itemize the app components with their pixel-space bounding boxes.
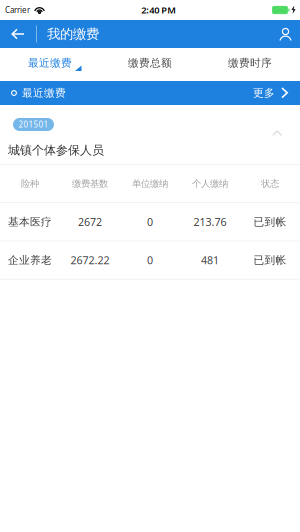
staticText: 最近缴费 <box>22 86 66 99</box>
staticText: 更多 <box>253 86 275 99</box>
button[interactable]: Back <box>0 20 36 48</box>
button[interactable]: 缴费总额 <box>100 48 200 81</box>
button[interactable]: Account <box>271 20 300 48</box>
staticText: Carrier <box>5 5 30 15</box>
staticText: 缴费时序 <box>228 56 272 69</box>
button[interactable]: 缴费时序 <box>200 48 300 81</box>
staticText: 0 <box>147 215 153 229</box>
staticText: 缴费基数 <box>72 178 108 189</box>
staticText: 我的缴费 <box>47 26 99 42</box>
button[interactable]: 更多 <box>245 81 300 105</box>
staticText: 个人缴纳 <box>192 178 228 189</box>
staticText: 城镇个体参保人员 <box>8 143 104 158</box>
staticText: 481 <box>201 253 219 267</box>
staticText: 201501 <box>18 119 48 130</box>
staticText: 2:40 PM <box>141 4 176 16</box>
staticText: 2672 <box>78 215 102 229</box>
staticText: 险种 <box>21 178 39 189</box>
staticText: 213.76 <box>193 215 226 229</box>
staticText: 状态 <box>261 178 279 189</box>
staticText: 最近缴费 <box>28 56 72 69</box>
staticText: 缴费总额 <box>128 56 172 69</box>
staticText: 单位缴纳 <box>132 178 168 189</box>
staticText: 基本医疗 <box>8 215 52 228</box>
button[interactable]: 最近缴费 <box>0 48 100 81</box>
staticText: 已到帐 <box>253 254 286 267</box>
staticText: 已到帐 <box>253 215 286 228</box>
staticText: 企业养老 <box>8 254 52 267</box>
staticText: 0 <box>147 253 153 267</box>
staticText: 2672.22 <box>70 253 109 267</box>
button[interactable]: Collapse <box>0 105 300 137</box>
